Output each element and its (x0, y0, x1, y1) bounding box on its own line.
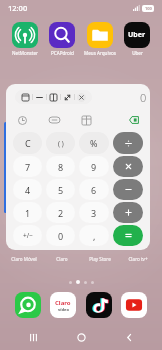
button[interactable]: , (79, 225, 109, 246)
staticText: 8 (58, 161, 64, 173)
staticText: Claro (55, 299, 71, 307)
staticText: 9 (91, 161, 97, 173)
button[interactable]: Expand (61, 91, 74, 104)
button[interactable]: 8 (46, 156, 75, 177)
staticText: 3 (91, 207, 97, 219)
button[interactable]: WhatsApp (15, 292, 41, 318)
button[interactable]: 9 (79, 156, 109, 177)
button[interactable]: 6 (79, 179, 109, 200)
button[interactable]: 5 (46, 179, 75, 200)
button[interactable]: ( ) (46, 132, 75, 154)
button[interactable]: 2 (46, 202, 75, 223)
button[interactable]: PCAPdroid (44, 22, 80, 56)
staticText: Uber (132, 50, 143, 56)
staticText: C (25, 137, 31, 149)
staticText: , (93, 230, 96, 242)
staticText: 2 (58, 207, 64, 219)
button[interactable]: Window mode (19, 91, 32, 104)
button[interactable] (113, 202, 143, 223)
button[interactable]: 0 (46, 225, 75, 246)
staticText: Claro tv+ (128, 256, 148, 262)
button[interactable]: 3 (79, 202, 109, 223)
button[interactable]: Minimize (33, 91, 46, 104)
staticText: 7 (25, 161, 31, 173)
button[interactable]: Claro tv+ (120, 256, 156, 262)
staticText: 5 (58, 184, 64, 196)
staticText: 6 (91, 184, 97, 196)
button[interactable]: Play Store (82, 256, 118, 262)
button[interactable]: Backspace (126, 112, 142, 128)
button[interactable]: 4 (13, 179, 42, 200)
staticText: 0 (140, 90, 147, 105)
staticText: PCAPdroid (51, 50, 74, 56)
button[interactable]: Unit converter (46, 112, 62, 128)
button[interactable]: Close (75, 91, 88, 104)
button[interactable] (113, 179, 143, 200)
button[interactable] (113, 156, 143, 177)
staticText: Claro (56, 256, 68, 262)
button[interactable]: 7 (13, 156, 42, 177)
staticText: NetMonster (12, 50, 38, 56)
staticText: Play Store (89, 256, 111, 262)
staticText: 12:00 (8, 3, 28, 13)
button[interactable]: Split screen (47, 91, 60, 104)
staticText: ( ) (58, 139, 64, 148)
staticText: Claro Móvel (11, 256, 37, 262)
button[interactable]: Claro vídeo (50, 292, 76, 318)
button[interactable]: TikTok (86, 292, 112, 318)
button[interactable]: +/− (13, 225, 42, 246)
button[interactable]: C (13, 132, 42, 154)
button[interactable] (113, 225, 143, 246)
staticText: 4 (25, 184, 31, 196)
button[interactable]: 1 (13, 202, 42, 223)
staticText: 1 (25, 207, 31, 219)
button[interactable]: Back (114, 328, 144, 346)
staticText: 0 (58, 230, 64, 242)
staticText: +/− (23, 231, 33, 240)
button[interactable]: History (14, 112, 30, 128)
button[interactable]: YouTube (121, 292, 147, 318)
staticText: 100 (145, 6, 152, 11)
button[interactable]: Uber (119, 22, 155, 56)
button[interactable] (113, 132, 143, 154)
button[interactable]: % (79, 132, 109, 154)
button[interactable]: Scientific keypad (78, 112, 94, 128)
staticText: Uber (128, 30, 146, 40)
button[interactable]: Recents (18, 328, 48, 346)
button[interactable]: Claro Móvel (6, 256, 42, 262)
staticText: vídeo (58, 307, 69, 312)
staticText: Meus Arquivos (84, 50, 116, 56)
button[interactable]: Home (66, 328, 96, 346)
button[interactable]: Claro (44, 256, 80, 262)
staticText: % (90, 137, 98, 149)
button[interactable]: Meus Arquivos (82, 22, 118, 56)
button[interactable]: NetMonster (7, 22, 43, 56)
